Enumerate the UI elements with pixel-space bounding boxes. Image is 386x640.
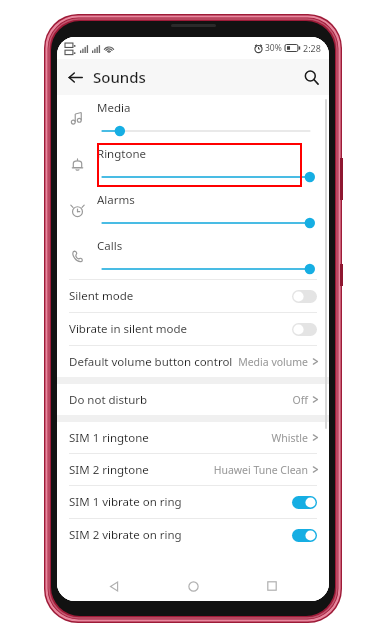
button[interactable]: Back: [92, 571, 136, 601]
button[interactable]: Media: [57, 95, 329, 141]
button[interactable]: Do not disturb: [57, 384, 329, 415]
staticText: SIM 1 ringtone: [69, 430, 271, 446]
button[interactable]: Home: [171, 571, 215, 601]
staticText: Huawei Tune Clean: [213, 463, 308, 477]
staticText: Do not disturb: [69, 392, 292, 408]
staticText: Media: [97, 100, 131, 116]
staticText: SIM 1 vibrate on ring: [69, 494, 292, 510]
staticText: Media volume: [238, 355, 308, 369]
button[interactable]: SIM 1 vibrate on ring: [57, 486, 329, 518]
staticText: SIM 2 ringtone: [69, 462, 213, 478]
button[interactable]: Default volume button control: [57, 346, 329, 377]
staticText: Sounds: [93, 67, 146, 87]
staticText: Default volume button control: [69, 354, 238, 370]
button[interactable]: Ringtone: [57, 141, 329, 187]
staticText: Vibrate in silent mode: [69, 321, 292, 337]
staticText: Alarms: [97, 192, 135, 208]
staticText: Ringtone: [97, 146, 147, 162]
staticText: 30%: [265, 42, 282, 54]
button[interactable]: SIM 1 ringtone: [57, 422, 329, 453]
staticText: SIM 2 vibrate on ring: [69, 527, 292, 543]
staticText: Off: [292, 393, 308, 407]
staticText: 2:28: [303, 42, 321, 54]
button[interactable]: Recent apps: [250, 571, 294, 601]
button[interactable]: Back: [57, 59, 93, 95]
staticText: Silent mode: [69, 288, 292, 304]
button[interactable]: Calls: [57, 233, 329, 279]
button[interactable]: Search: [293, 59, 329, 95]
button[interactable]: SIM 2 vibrate on ring: [57, 519, 329, 551]
button[interactable]: Silent mode: [57, 280, 329, 312]
button[interactable]: SIM 2 ringtone: [57, 454, 329, 485]
button[interactable]: Vibrate in silent mode: [57, 313, 329, 345]
staticText: Whistle: [271, 431, 308, 445]
staticText: Calls: [97, 238, 123, 254]
button[interactable]: Alarms: [57, 187, 329, 233]
